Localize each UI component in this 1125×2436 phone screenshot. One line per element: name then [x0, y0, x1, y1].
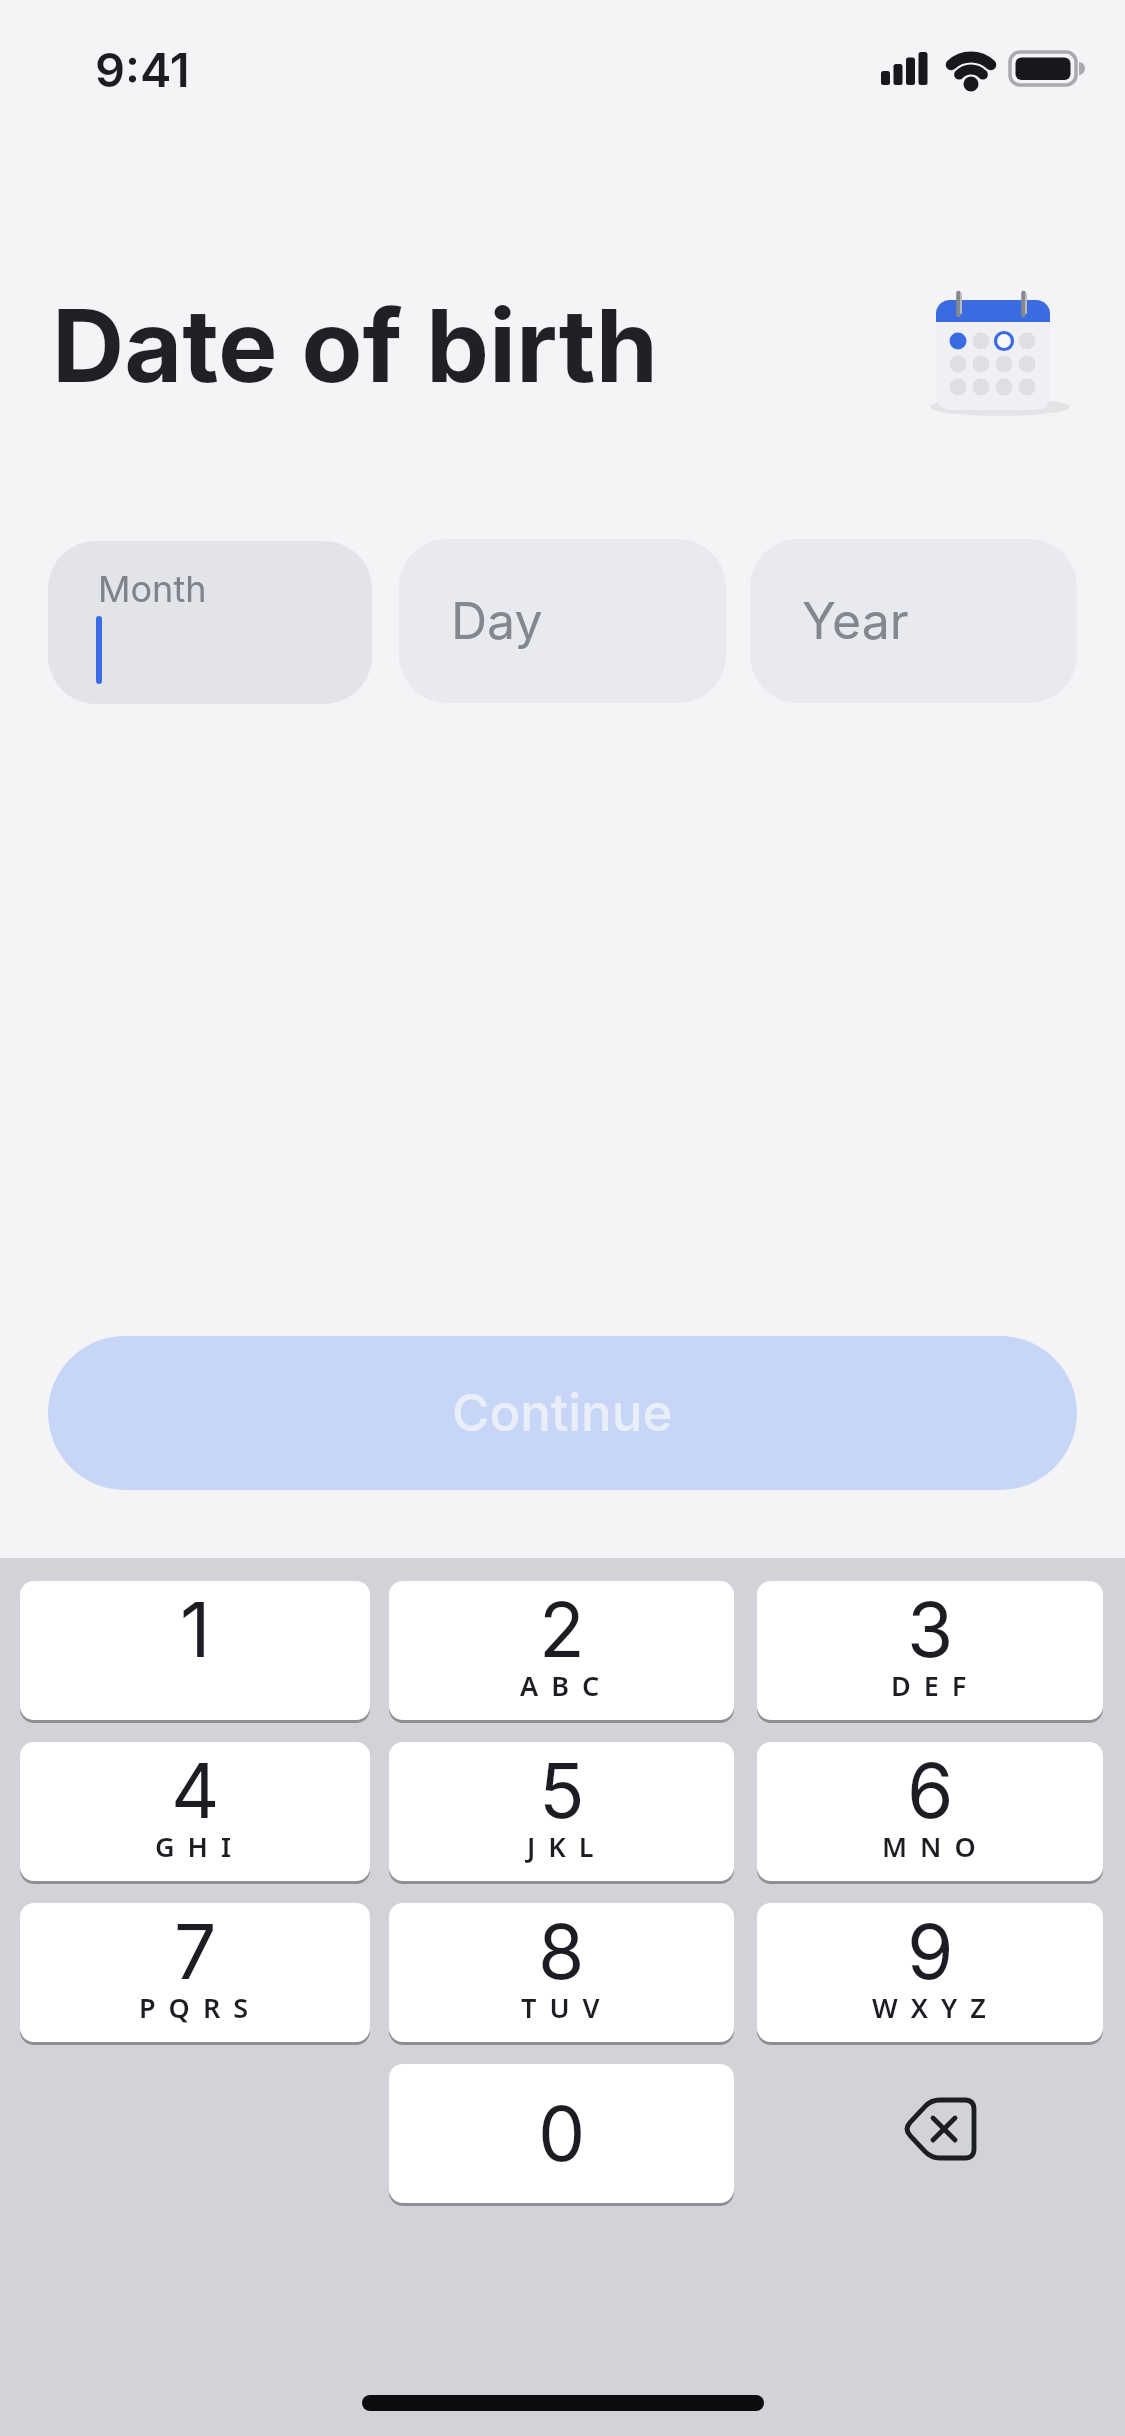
button[interactable]: 9 — [757, 1903, 1103, 2042]
button[interactable]: 8 — [389, 1903, 734, 2042]
staticText: 1 — [180, 1584, 211, 1675]
button[interactable]: Month — [48, 541, 372, 704]
staticText: 9 — [907, 1906, 954, 1997]
staticText: Continue — [452, 1382, 673, 1444]
button[interactable]: 4 — [20, 1742, 370, 1881]
staticText: 7 — [174, 1906, 217, 1997]
staticText: 4 — [171, 1745, 220, 1836]
button[interactable]: 0 — [389, 2064, 734, 2203]
button[interactable]: 7 — [20, 1903, 370, 2042]
button[interactable]: 6 — [757, 1742, 1103, 1881]
staticText: P Q R S — [139, 1989, 252, 2026]
staticText: T U V — [521, 1989, 603, 2026]
staticText: Year — [802, 591, 909, 651]
staticText: 5 — [539, 1745, 585, 1836]
staticText: Date of birth — [52, 285, 658, 406]
button[interactable]: Continue — [48, 1336, 1077, 1490]
staticText: D E F — [891, 1667, 970, 1704]
staticText: A B C — [520, 1667, 603, 1704]
staticText: 8 — [538, 1906, 585, 1997]
staticText: 3 — [907, 1584, 954, 1675]
staticText: Day — [451, 591, 543, 651]
staticText: G H I — [155, 1828, 235, 1865]
button[interactable]: Year — [750, 539, 1077, 703]
staticText: W X Y Z — [872, 1989, 989, 2026]
staticText: M N O — [882, 1828, 979, 1865]
button[interactable]: 1 — [20, 1581, 370, 1720]
staticText: J K L — [527, 1828, 597, 1865]
staticText: 6 — [907, 1745, 954, 1836]
button[interactable]: 5 — [389, 1742, 734, 1881]
staticText: Month — [98, 567, 207, 611]
button[interactable]: 2 — [389, 1581, 734, 1720]
button[interactable]: 3 — [757, 1581, 1103, 1720]
button[interactable] — [880, 2090, 1000, 2180]
button[interactable]: Day — [399, 539, 726, 703]
staticText: 0 — [538, 2088, 586, 2179]
staticText: 2 — [539, 1584, 585, 1675]
staticText: 9:41 — [95, 41, 190, 98]
